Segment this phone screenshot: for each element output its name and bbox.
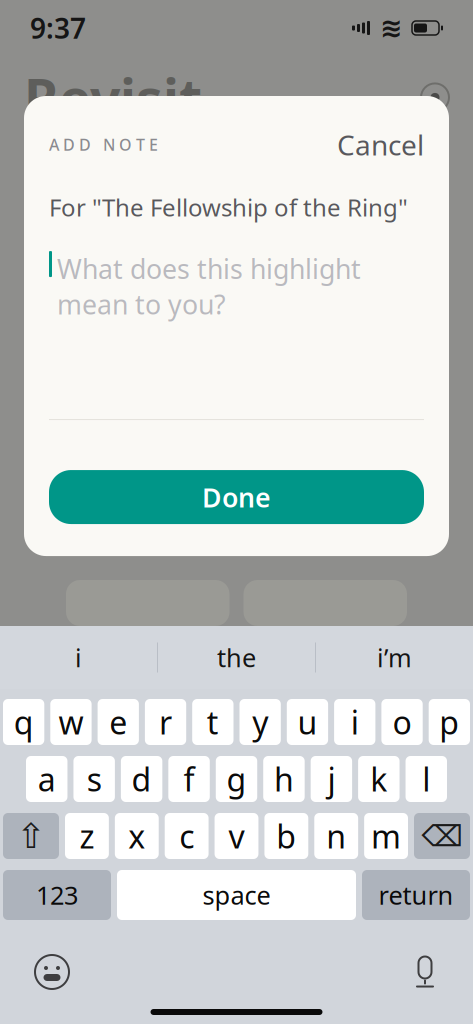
button[interactable]: Done [49, 470, 424, 524]
staticText: Cancel [337, 126, 424, 163]
button[interactable]: i’m [316, 626, 473, 689]
staticText: b [276, 815, 296, 857]
button[interactable]: n [314, 813, 358, 859]
staticText: z [79, 815, 94, 857]
button[interactable]: j [311, 756, 352, 802]
staticText: ⇧ [16, 816, 45, 856]
staticText: return [378, 878, 453, 912]
button[interactable]: Cancel [321, 122, 424, 167]
button[interactable]: o [381, 699, 423, 745]
button[interactable]: b [264, 813, 308, 859]
button[interactable]: return [362, 870, 470, 920]
button[interactable]: x [115, 813, 159, 859]
button[interactable]: l [406, 756, 447, 802]
button[interactable]: q [3, 699, 44, 745]
staticText: s [87, 758, 102, 800]
button[interactable]: What does this highlight mean to you? [49, 223, 424, 419]
button[interactable]: z [65, 813, 109, 859]
button[interactable]: s [73, 756, 115, 802]
staticText: e [109, 701, 127, 743]
staticText: g [226, 758, 246, 800]
button[interactable]: i [0, 626, 157, 689]
button[interactable]: Shift [3, 813, 59, 859]
staticText: i’m [377, 641, 412, 674]
button[interactable]: d [121, 756, 162, 802]
staticText: ⌫ [421, 819, 462, 853]
button[interactable]: w [50, 699, 92, 745]
button[interactable]: a [26, 756, 67, 802]
button[interactable]: g [216, 756, 257, 802]
staticText: A D D N O T E [49, 134, 158, 155]
staticText: 9:37 [30, 9, 86, 47]
staticText: y [252, 701, 268, 743]
staticText: ≋ [380, 13, 402, 43]
staticText: the [217, 641, 256, 674]
staticText: j [327, 758, 335, 800]
staticText: i [75, 641, 82, 674]
staticText: k [370, 758, 387, 800]
button[interactable]: Emoji [25, 945, 79, 999]
staticText: l [422, 758, 430, 800]
staticText: n [326, 815, 346, 857]
staticText: c [179, 815, 194, 857]
staticText: f [184, 758, 195, 800]
staticText: x [128, 815, 145, 857]
button[interactable]: t [192, 699, 233, 745]
button[interactable]: f [168, 756, 210, 802]
staticText: t [207, 701, 219, 743]
button[interactable]: v [215, 813, 258, 859]
staticText: i [351, 701, 359, 743]
staticText: h [274, 758, 294, 800]
button[interactable]: c [165, 813, 209, 859]
button[interactable]: space [117, 870, 356, 920]
button[interactable]: i [334, 699, 375, 745]
button[interactable]: m [364, 813, 408, 859]
staticText: v [228, 815, 244, 857]
button[interactable]: r [145, 699, 186, 745]
button[interactable]: 123 [3, 870, 111, 920]
button[interactable]: Delete [414, 813, 470, 859]
staticText: r [159, 701, 172, 743]
staticText: u [297, 701, 317, 743]
staticText: What does this highlight mean to you? [57, 251, 361, 322]
button[interactable]: k [358, 756, 399, 802]
staticText: a [38, 758, 56, 800]
staticText: m [371, 815, 401, 857]
button[interactable]: y [239, 699, 281, 745]
button[interactable]: u [287, 699, 328, 745]
staticText: d [132, 758, 152, 800]
staticText: 123 [36, 878, 78, 912]
staticText: For "The Fellowship of the Ring" [49, 191, 408, 223]
staticText: Revisit [24, 62, 202, 133]
staticText: p [439, 701, 459, 743]
staticText: Done [202, 479, 271, 515]
button[interactable]: h [263, 756, 305, 802]
button[interactable]: p [429, 699, 470, 745]
staticText: q [14, 701, 34, 743]
button[interactable]: the [158, 626, 315, 689]
button[interactable]: e [98, 699, 139, 745]
staticText: space [202, 878, 270, 912]
staticText: o [393, 701, 412, 743]
staticText: w [58, 701, 83, 743]
button[interactable]: Dictation [402, 945, 448, 999]
